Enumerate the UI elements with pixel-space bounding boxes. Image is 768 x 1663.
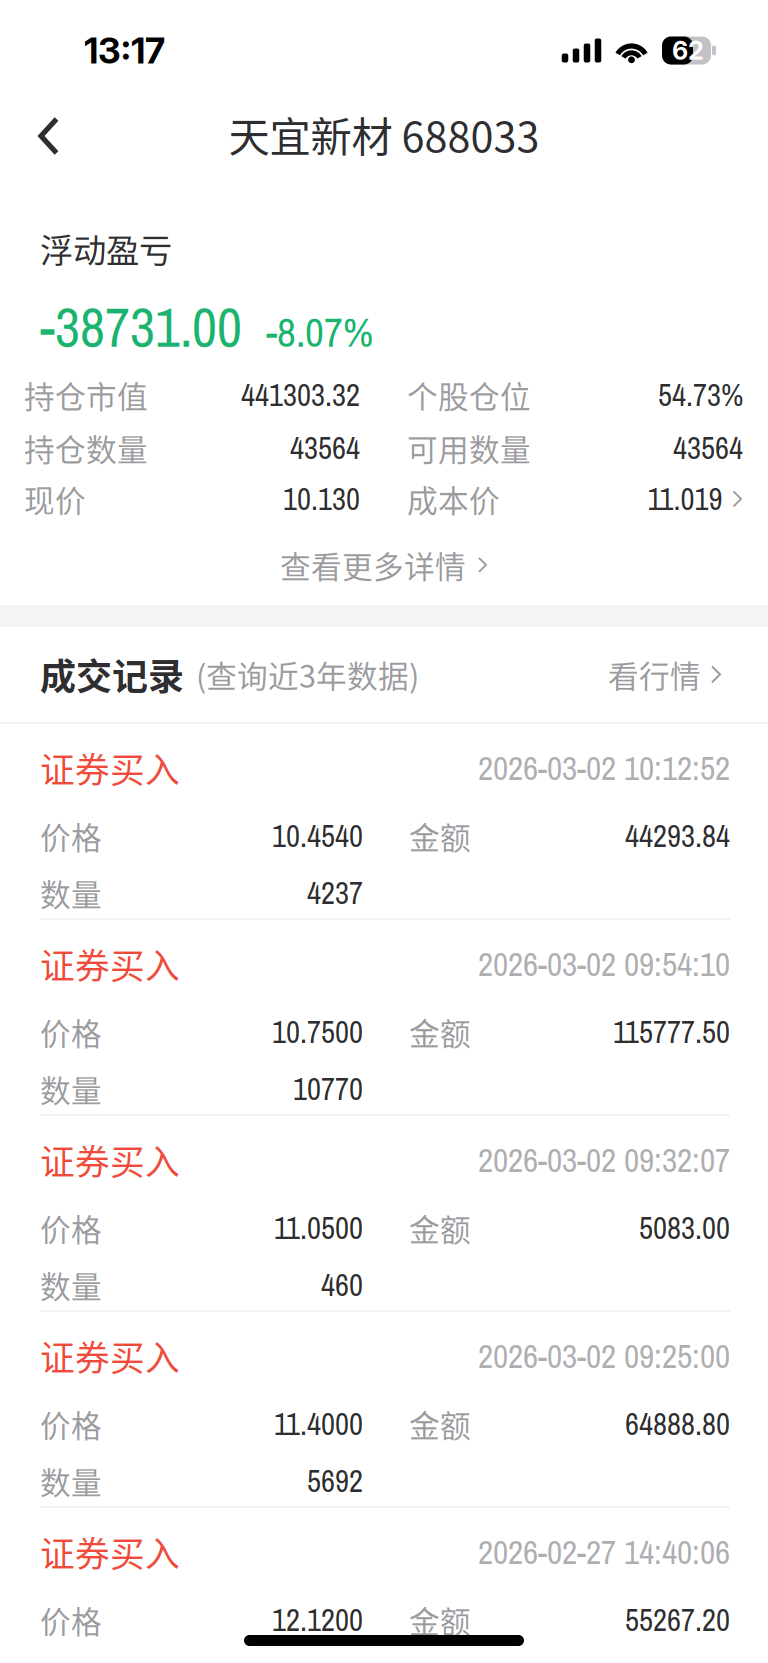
staticText: 2026-03-02 09:25:00 bbox=[478, 1333, 730, 1378]
staticText: 查看更多详情 bbox=[280, 543, 466, 587]
staticText: -38731.00 bbox=[40, 290, 242, 364]
staticText: 54.73% bbox=[658, 374, 743, 415]
staticText: 460 bbox=[321, 1264, 363, 1305]
staticText: 115777.50 bbox=[613, 1011, 730, 1052]
staticText: 金额 bbox=[409, 1010, 471, 1054]
staticText: 64888.80 bbox=[625, 1403, 730, 1444]
staticText: 4237 bbox=[307, 872, 363, 913]
staticText: 2026-02-27 14:40:06 bbox=[478, 1529, 730, 1574]
staticText: 11.019 bbox=[647, 478, 722, 519]
staticText: 44293.84 bbox=[625, 815, 730, 856]
staticText: 证券买入 bbox=[40, 1331, 180, 1381]
staticText: -8.07% bbox=[266, 304, 373, 360]
staticText: (查询近3年数据) bbox=[196, 652, 419, 697]
staticText: 441303.32 bbox=[241, 374, 360, 415]
staticText: 2026-03-02 09:32:07 bbox=[478, 1137, 730, 1182]
staticText: 成本价 bbox=[407, 477, 500, 521]
staticText: 现价 bbox=[24, 477, 86, 521]
staticText: 持仓数量 bbox=[24, 426, 148, 470]
staticText: 11.4000 bbox=[274, 1403, 363, 1444]
staticText: 数量 bbox=[40, 1459, 102, 1503]
staticText: 5083.00 bbox=[639, 1207, 730, 1248]
staticText: 价格 bbox=[40, 1206, 102, 1250]
staticText: 证券买入 bbox=[40, 1527, 180, 1577]
button[interactable]: 查看更多详情 bbox=[0, 550, 768, 580]
staticText: 11.0500 bbox=[274, 1207, 363, 1248]
staticText: 数量 bbox=[40, 871, 102, 915]
staticText: 金额 bbox=[409, 1402, 471, 1446]
staticText: 10.4540 bbox=[272, 815, 363, 856]
staticText: 43564 bbox=[290, 427, 360, 468]
staticText: 价格 bbox=[40, 1402, 102, 1446]
staticText: 数量 bbox=[40, 1263, 102, 1307]
staticText: 证券买入 bbox=[40, 743, 180, 793]
staticText: 金额 bbox=[409, 1206, 471, 1250]
staticText: 价格 bbox=[40, 1010, 102, 1054]
staticText: 成交记录 bbox=[40, 648, 184, 700]
staticText: 2026-03-02 10:12:52 bbox=[478, 745, 730, 790]
staticText: 证券买入 bbox=[40, 1135, 180, 1185]
staticText: 55267.20 bbox=[625, 1599, 730, 1640]
staticText: 价格 bbox=[40, 1598, 102, 1642]
staticText: 金额 bbox=[409, 1598, 471, 1642]
staticText: 持仓市值 bbox=[24, 373, 148, 417]
staticText: 62 bbox=[672, 35, 704, 66]
staticText: 证券买入 bbox=[40, 939, 180, 989]
staticText: 天宜新材 688033 bbox=[228, 104, 539, 164]
staticText: 个股仓位 bbox=[407, 373, 531, 417]
staticText: 金额 bbox=[409, 814, 471, 858]
staticText: 数量 bbox=[40, 1067, 102, 1111]
staticText: 看行情 bbox=[608, 652, 701, 697]
staticText: 12.1200 bbox=[272, 1599, 363, 1640]
staticText: 2026-03-02 09:54:10 bbox=[478, 941, 730, 986]
button[interactable]: 看行情 bbox=[608, 632, 768, 717]
staticText: 13:17 bbox=[84, 29, 165, 72]
staticText: 10.7500 bbox=[272, 1011, 363, 1052]
button[interactable]: Back bbox=[0, 95, 110, 183]
staticText: 可用数量 bbox=[407, 426, 531, 470]
staticText: 10770 bbox=[293, 1068, 363, 1109]
staticText: 43564 bbox=[673, 427, 743, 468]
staticText: 5692 bbox=[307, 1460, 363, 1501]
staticText: 价格 bbox=[40, 814, 102, 858]
staticText: 10.130 bbox=[283, 478, 360, 519]
staticText: 浮动盈亏 bbox=[40, 224, 172, 272]
